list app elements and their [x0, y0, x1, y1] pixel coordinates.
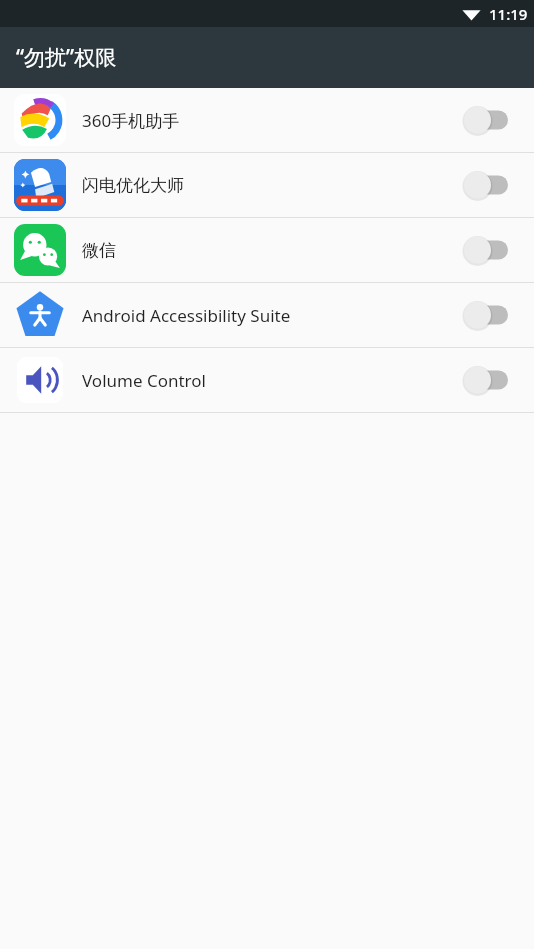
button[interactable]: Toggle permission	[460, 298, 514, 332]
staticText: “勿扰”权限	[16, 43, 117, 72]
button[interactable]: 360手机助手	[0, 88, 534, 152]
staticText: 闪电优化大师	[82, 175, 184, 196]
button[interactable]: 闪电优化大师	[0, 153, 534, 217]
button[interactable]: Toggle permission	[460, 103, 514, 137]
staticText: 微信	[82, 240, 116, 261]
staticText: Android Accessibility Suite	[82, 304, 291, 327]
button[interactable]: Toggle permission	[460, 233, 514, 267]
staticText: 360手机助手	[82, 109, 180, 132]
button[interactable]: Toggle permission	[460, 168, 514, 202]
button[interactable]: 微信	[0, 218, 534, 282]
staticText: 11:19	[489, 4, 528, 24]
button[interactable]: Volume Control	[0, 348, 534, 412]
button[interactable]: Toggle permission	[460, 363, 514, 397]
staticText: Volume Control	[82, 369, 206, 392]
button[interactable]: Android Accessibility Suite	[0, 283, 534, 347]
